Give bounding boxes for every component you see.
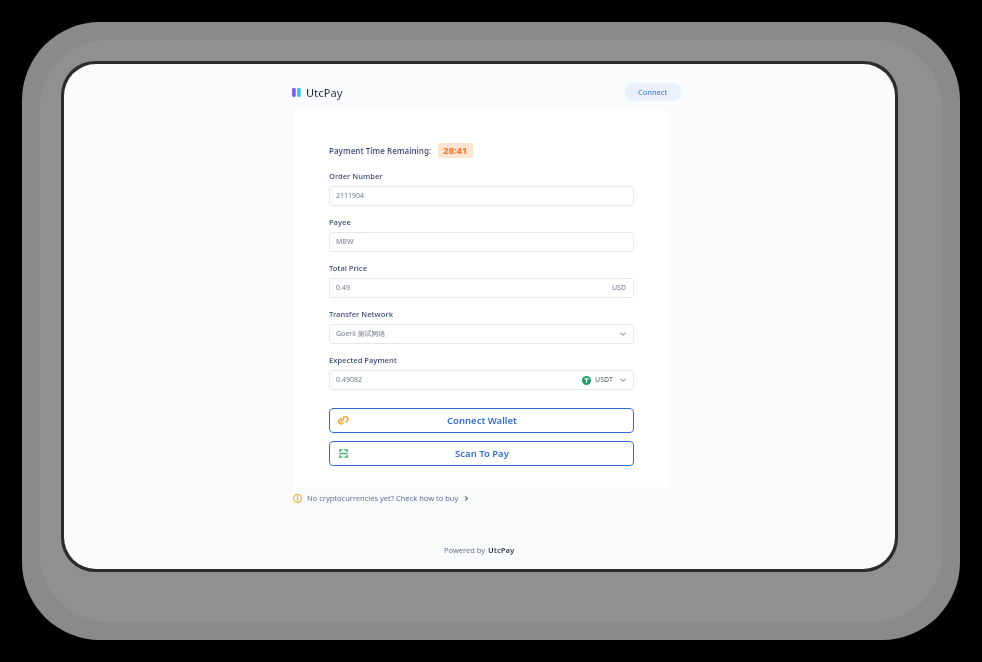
- staticText: Total Price: [329, 263, 368, 273]
- staticText: MBW: [336, 237, 354, 247]
- staticText: Payee: [329, 217, 351, 227]
- button[interactable]: UtcPay: [291, 85, 343, 100]
- staticText: USDT: [595, 375, 613, 385]
- staticText: Connect: [638, 87, 668, 97]
- staticText: Powered by: [444, 545, 488, 555]
- staticText: Goerli 测试网络: [336, 329, 386, 339]
- button[interactable]: 0.49: [329, 278, 634, 298]
- staticText: Scan To Pay: [344, 447, 620, 460]
- button[interactable]: Scan To Pay: [329, 441, 634, 466]
- staticText: Transfer Network: [329, 309, 394, 319]
- staticText: 0.49082: [336, 375, 362, 385]
- staticText: Expected Payment: [329, 355, 397, 365]
- button[interactable]: 0.49082: [329, 370, 634, 390]
- staticText: Connect Wallet: [344, 414, 620, 427]
- staticText: UtcPay: [488, 545, 515, 555]
- staticText: Order Number: [329, 171, 383, 181]
- staticText: 28:41: [443, 144, 468, 157]
- button[interactable]: Connect: [625, 83, 681, 101]
- button[interactable]: 2111904: [329, 186, 634, 206]
- button[interactable]: MBW: [329, 232, 634, 252]
- button[interactable]: No cryptocurrencies yet? Check how to bu…: [293, 493, 470, 503]
- staticText: UtcPay: [306, 85, 343, 100]
- staticText: 0.49: [336, 283, 350, 293]
- staticText: 2111904: [336, 191, 365, 201]
- button[interactable]: Connect Wallet: [329, 408, 634, 433]
- button[interactable]: Goerli 测试网络: [329, 324, 634, 344]
- staticText: USD: [612, 283, 627, 293]
- staticText: No cryptocurrencies yet? Check how to bu…: [307, 493, 459, 503]
- staticText: Payment Time Remaining:: [329, 145, 432, 156]
